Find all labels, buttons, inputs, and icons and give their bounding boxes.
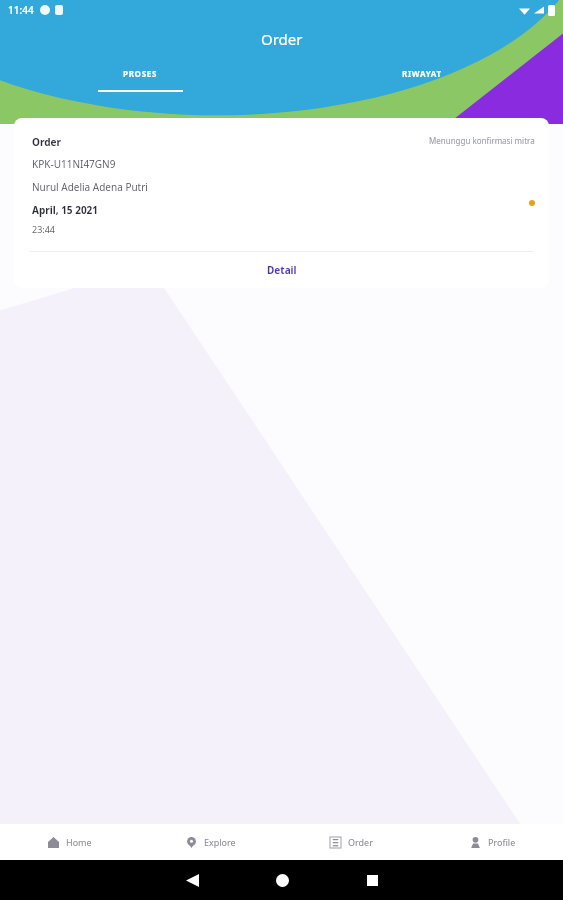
button[interactable]: Detail bbox=[14, 252, 549, 288]
staticText: Home bbox=[66, 836, 92, 848]
staticText: KPK-U11NI47GN9 bbox=[32, 157, 116, 171]
staticText: 23:44 bbox=[32, 223, 56, 235]
staticText: Explore bbox=[204, 836, 236, 848]
staticText: Nurul Adelia Adena Putri bbox=[32, 180, 148, 194]
button[interactable]: RIWAYAT bbox=[281, 62, 563, 94]
staticText: RIWAYAT bbox=[402, 68, 442, 79]
button[interactable]: Back bbox=[186, 874, 199, 887]
button[interactable]: Explore bbox=[140, 824, 281, 860]
button[interactable]: PROSES bbox=[0, 62, 281, 94]
button[interactable]: Profile bbox=[422, 824, 563, 860]
staticText: Menunggu konfirmasi mitra bbox=[429, 135, 535, 146]
staticText: PROSES bbox=[123, 68, 158, 79]
staticText: Order bbox=[261, 29, 303, 49]
staticText: April, 15 2021 bbox=[32, 203, 99, 217]
button[interactable]: Order bbox=[281, 824, 422, 860]
staticText: 11:44 bbox=[8, 3, 34, 17]
staticText: Order bbox=[32, 135, 61, 149]
staticText: Profile bbox=[488, 836, 516, 848]
button[interactable]: Home bbox=[0, 824, 140, 860]
button[interactable]: Home bbox=[276, 874, 289, 887]
button[interactable]: Order bbox=[14, 118, 549, 288]
staticText: Detail bbox=[267, 263, 297, 277]
staticText: Order bbox=[348, 836, 373, 848]
